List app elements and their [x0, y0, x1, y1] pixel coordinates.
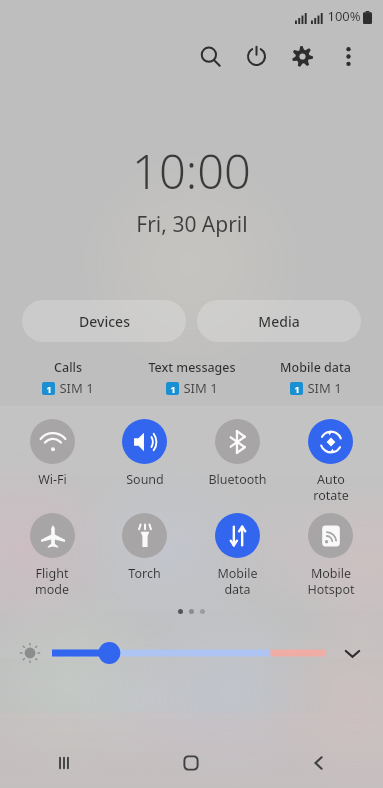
button[interactable]: Recent apps — [0, 738, 127, 788]
staticText: Bluetooth — [208, 471, 267, 488]
button[interactable]: Brightness — [52, 640, 325, 666]
button[interactable]: Flight mode — [6, 513, 98, 597]
button[interactable]: Expand — [337, 638, 367, 668]
staticText: 1 — [170, 383, 176, 395]
staticText: 1 — [46, 383, 52, 395]
staticText: Text messages — [148, 359, 236, 376]
staticText: Wi-Fi — [38, 471, 67, 488]
button[interactable]: Text messages — [125, 359, 258, 397]
staticText: Mobile data — [217, 565, 258, 597]
button[interactable]: Bluetooth — [191, 419, 284, 488]
button[interactable]: Wi-Fi — [6, 419, 98, 488]
staticText: Calls — [54, 359, 82, 376]
button[interactable]: Auto rotate — [284, 419, 377, 503]
staticText: SIM 1 — [307, 379, 342, 397]
staticText: Sound — [126, 471, 164, 488]
staticText: Fri, 30 April — [136, 210, 248, 239]
button[interactable]: Torch — [98, 513, 191, 582]
staticText: Torch — [128, 565, 161, 582]
button[interactable]: More options — [325, 33, 371, 79]
button[interactable]: Sound — [98, 419, 191, 488]
staticText: SIM 1 — [183, 379, 218, 397]
staticText: 1 — [294, 383, 300, 395]
staticText: Auto rotate — [313, 471, 349, 503]
button[interactable]: Mobile data — [191, 513, 284, 597]
button[interactable]: Media — [197, 300, 361, 342]
staticText: 10:00 — [132, 139, 251, 203]
button[interactable]: Calls — [10, 359, 125, 397]
button[interactable]: Home — [127, 738, 255, 788]
staticText: SIM 1 — [59, 379, 94, 397]
button[interactable]: Search — [187, 33, 233, 79]
staticText: Mobile Hotspot — [307, 565, 355, 597]
staticText: Mobile data — [280, 359, 351, 376]
staticText: Flight mode — [35, 565, 69, 597]
staticText: Media — [258, 312, 300, 331]
button[interactable]: Mobile data — [258, 359, 373, 397]
staticText: 100% — [327, 7, 361, 25]
button[interactable]: Back — [255, 738, 383, 788]
button[interactable]: Devices — [22, 300, 186, 342]
button[interactable]: Settings — [279, 33, 325, 79]
button[interactable]: Mobile Hotspot — [284, 513, 377, 597]
button[interactable]: Power — [233, 33, 279, 79]
staticText: Devices — [79, 312, 130, 331]
